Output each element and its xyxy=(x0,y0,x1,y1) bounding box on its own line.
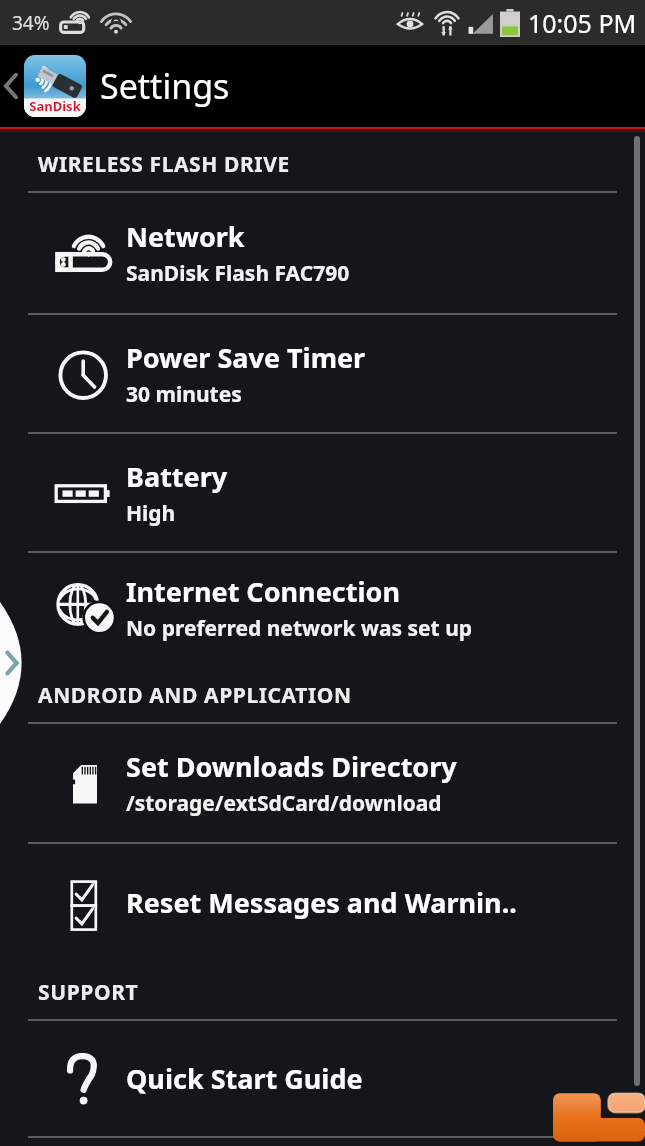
button[interactable]: Power Save Timer xyxy=(0,315,645,432)
button[interactable]: Battery xyxy=(0,434,645,551)
staticText: Settings xyxy=(100,63,230,109)
button[interactable]: Set Downloads Directory xyxy=(0,724,645,842)
staticText: WIRELESS FLASH DRIVE xyxy=(38,150,290,179)
button[interactable]: Open drawer xyxy=(0,602,32,724)
staticText: SanDisk xyxy=(29,97,81,115)
staticText: Quick Start Guide xyxy=(126,1060,363,1097)
staticText: ANDROID AND APPLICATION xyxy=(38,681,352,710)
button[interactable]: Up xyxy=(0,47,88,125)
staticText: Internet Connection xyxy=(126,573,400,610)
staticText: SanDisk Flash FAC790 xyxy=(126,259,350,288)
staticText: Network xyxy=(126,218,245,255)
staticText: Set Downloads Directory xyxy=(126,748,457,785)
staticText: 34% xyxy=(12,10,50,36)
staticText: Battery xyxy=(126,458,228,495)
button[interactable]: Internet Connection xyxy=(0,553,645,663)
staticText: 30 minutes xyxy=(126,380,242,409)
staticText: SUPPORT xyxy=(38,978,139,1007)
button[interactable]: Quick Start Guide xyxy=(0,1021,645,1136)
staticText: 10:05 PM xyxy=(528,6,637,40)
staticText: High xyxy=(126,499,176,528)
staticText: /storage/extSdCard/download xyxy=(126,789,442,818)
button[interactable]: Reset Messages and Warnin.. xyxy=(0,844,645,960)
staticText: No preferred network was set up xyxy=(126,614,473,643)
staticText: Power Save Timer xyxy=(126,339,366,376)
button[interactable]: Network xyxy=(0,193,645,313)
staticText: Reset Messages and Warnin.. xyxy=(126,884,517,921)
